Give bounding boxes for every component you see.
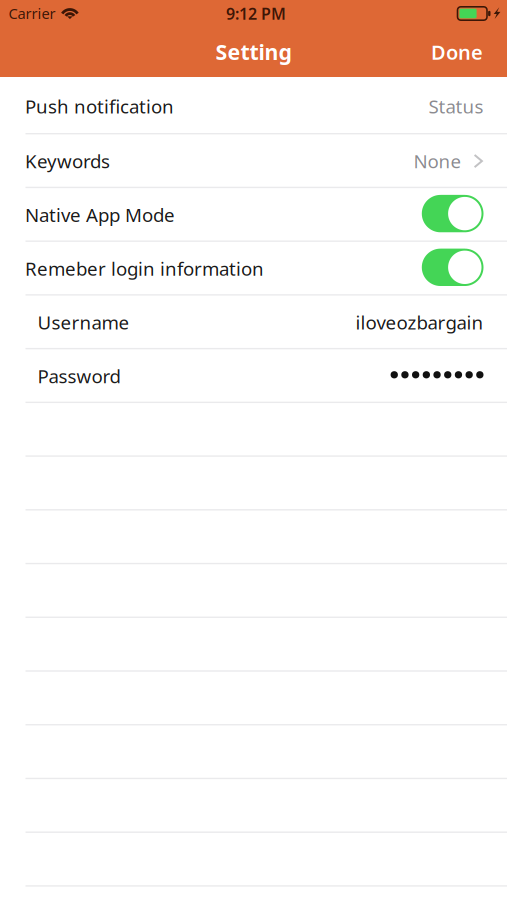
staticText: None <box>413 149 461 173</box>
button[interactable]: Done <box>403 31 483 73</box>
button[interactable]: Remeber login information, on <box>422 249 483 286</box>
button[interactable]: Username <box>0 294 507 348</box>
button[interactable]: Native App Mode <box>0 187 507 240</box>
staticText: iloveozbargain <box>355 310 483 335</box>
staticText: Username <box>38 310 130 335</box>
staticText: Push notification <box>25 94 174 119</box>
staticText: Native App Mode <box>25 202 175 227</box>
staticText: 9:12 PM <box>226 3 286 24</box>
staticText: Password <box>38 364 121 388</box>
button[interactable]: Password <box>0 348 507 402</box>
button[interactable]: Keywords <box>0 133 507 187</box>
staticText: Keywords <box>25 149 110 173</box>
button[interactable]: Remeber login information <box>0 240 507 294</box>
button[interactable]: Push notification <box>0 77 507 133</box>
button[interactable]: Native App Mode, on <box>422 195 483 232</box>
staticText: Setting <box>215 37 291 66</box>
staticText: Status <box>428 94 483 119</box>
staticText: Remeber login information <box>25 256 264 281</box>
staticText: Carrier <box>8 3 55 23</box>
staticText: Done <box>431 39 483 65</box>
